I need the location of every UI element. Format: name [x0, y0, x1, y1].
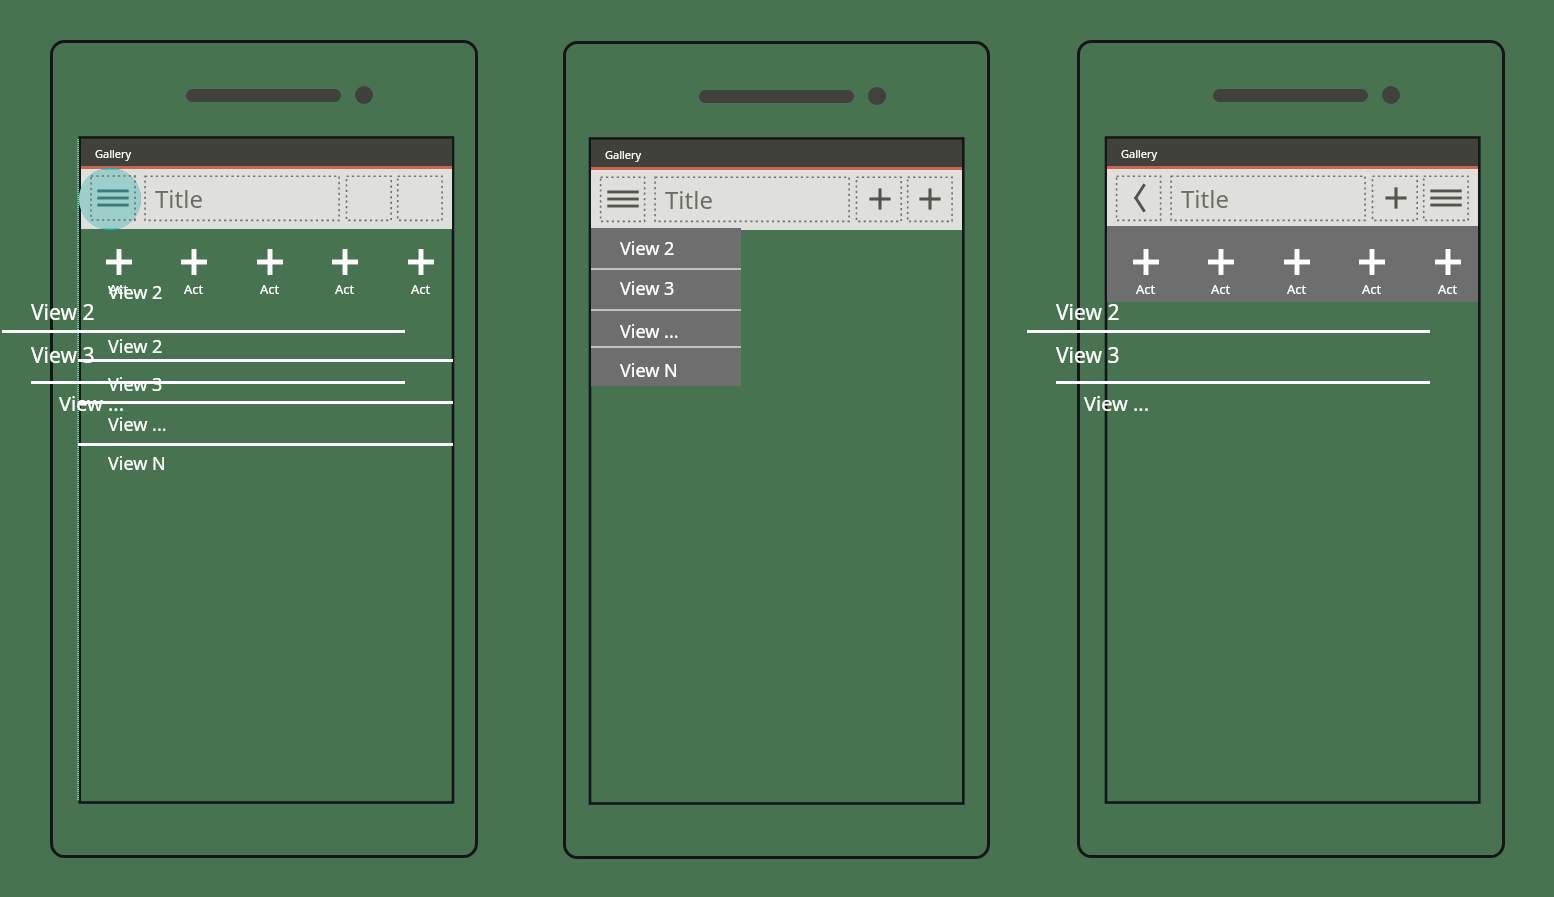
staticText: Act [232, 280, 307, 298]
button[interactable]: Action [1334, 245, 1409, 300]
button[interactable]: View N [78, 447, 453, 480]
staticText: View 3 [31, 341, 95, 370]
staticText: View 2 [108, 334, 163, 359]
button[interactable]: View 3 [1027, 335, 1430, 381]
staticText: Act [1183, 280, 1258, 298]
button[interactable]: Add [857, 177, 902, 221]
staticText: Gallery [1121, 146, 1158, 161]
staticText: Act [1259, 280, 1334, 298]
button[interactable]: Back [1117, 176, 1161, 220]
button[interactable]: View ... [591, 310, 741, 347]
button[interactable]: View 2 [2, 292, 405, 330]
button[interactable]: Menu [91, 176, 135, 220]
staticText: Act [1410, 280, 1485, 298]
staticText: Act [383, 280, 458, 298]
button[interactable]: Action [1108, 245, 1183, 300]
staticText: Act [81, 280, 156, 298]
button[interactable]: Action [1410, 245, 1485, 300]
button[interactable]: Open navigation drawer [91, 176, 135, 220]
staticText: View ... [59, 390, 125, 417]
staticText: Title [155, 182, 203, 215]
button[interactable]: View 2 [78, 276, 453, 309]
button[interactable]: View ... [78, 408, 453, 441]
staticText: View 2 [31, 298, 95, 327]
button[interactable]: View ... [31, 384, 405, 422]
button[interactable]: Action [232, 245, 307, 300]
staticText: View 2 [620, 236, 675, 261]
staticText: View N [620, 358, 678, 383]
staticText: Act [156, 280, 231, 298]
staticText: View 2 [108, 280, 163, 305]
button[interactable]: Menu [601, 177, 645, 221]
staticText: View ... [108, 412, 167, 437]
button[interactable]: Add [908, 177, 952, 221]
staticText: View N [108, 451, 166, 476]
staticText: Act [1108, 280, 1183, 298]
staticText: View 3 [108, 372, 163, 397]
button[interactable]: Action [1183, 245, 1258, 300]
staticText: Act [307, 280, 382, 298]
button[interactable]: Menu [1424, 176, 1468, 220]
staticText: Gallery [95, 146, 132, 161]
button[interactable]: Add [1373, 176, 1418, 220]
button[interactable]: Title [1171, 176, 1365, 220]
button[interactable]: Title [655, 177, 849, 221]
staticText: View ... [620, 319, 679, 344]
button[interactable]: View 2 [591, 228, 741, 269]
button[interactable]: View 2 [78, 330, 453, 363]
staticText: View 3 [620, 276, 675, 301]
button[interactable]: View 3 [2, 335, 405, 381]
staticText: View 2 [1056, 298, 1120, 327]
button[interactable]: Action [383, 245, 458, 300]
staticText: Act [1334, 280, 1409, 298]
staticText: Title [665, 183, 713, 216]
button[interactable]: Action [81, 245, 156, 300]
staticText: Title [1181, 182, 1229, 215]
staticText: Gallery [605, 147, 642, 162]
button[interactable]: View 2 [1027, 292, 1430, 330]
button[interactable]: Action [1259, 245, 1334, 300]
button[interactable]: View 3 [78, 368, 453, 401]
staticText: View 3 [1056, 341, 1120, 370]
staticText: View ... [1084, 390, 1150, 417]
button[interactable]: Action [307, 245, 382, 300]
button[interactable]: View 3 [591, 269, 741, 310]
button[interactable]: Title [145, 176, 339, 220]
button[interactable]: View N [591, 347, 741, 386]
button[interactable]: View ... [1056, 384, 1430, 422]
button[interactable]: Action [156, 245, 231, 300]
